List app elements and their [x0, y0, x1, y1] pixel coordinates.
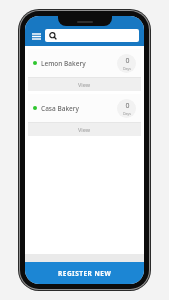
- button[interactable]: View: [28, 123, 141, 136]
- staticText: REGISTER NEW: [58, 269, 112, 278]
- staticText: View: [78, 126, 91, 133]
- staticText: Lemon Bakery: [41, 59, 86, 68]
- button[interactable]: [45, 29, 139, 42]
- staticText: 0: [125, 56, 130, 66]
- button[interactable]: Menu: [29, 29, 43, 43]
- staticText: Days: [123, 66, 131, 71]
- button[interactable]: REGISTER NEW: [25, 262, 144, 284]
- staticText: View: [78, 81, 91, 88]
- staticText: Days: [123, 111, 131, 116]
- staticText: 0: [125, 101, 130, 111]
- button[interactable]: View: [28, 78, 141, 91]
- staticText: Casa Bakery: [41, 104, 79, 113]
